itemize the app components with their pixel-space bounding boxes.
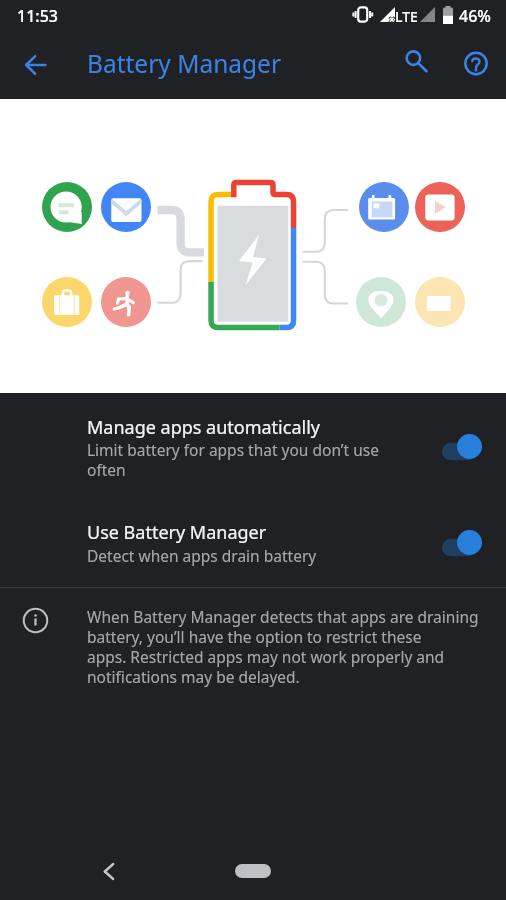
button[interactable]: Toggle <box>441 529 483 555</box>
staticText: When Battery Manager detects that apps a… <box>87 606 479 687</box>
staticText: LTE <box>395 7 418 26</box>
staticText: 46% <box>459 5 491 27</box>
staticText: Use Battery Manager <box>87 520 267 545</box>
staticText: 11:53 <box>17 5 58 27</box>
button[interactable]: Back <box>11 40 59 88</box>
staticText: Limit battery for apps that you don’t us… <box>87 439 379 480</box>
button[interactable]: Help <box>452 40 500 88</box>
staticText: Manage apps automatically <box>87 415 320 440</box>
button[interactable]: Home <box>215 854 291 888</box>
button[interactable]: Toggle <box>441 433 483 459</box>
button[interactable] <box>0 494 506 574</box>
staticText: Detect when apps drain battery <box>87 545 317 566</box>
button[interactable]: Back <box>85 849 133 893</box>
staticText: Battery Manager <box>87 47 282 80</box>
button[interactable]: Search <box>393 40 441 88</box>
button[interactable] <box>0 393 506 494</box>
